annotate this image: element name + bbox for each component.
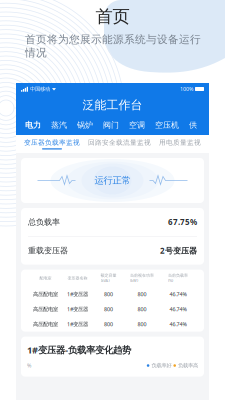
staticText: 首页将为您展示能源系统与设备运行情况	[25, 33, 201, 59]
staticText: 100%	[180, 85, 193, 93]
staticText: 运行正常	[94, 175, 130, 186]
staticText: 800	[104, 321, 113, 328]
staticText: 46.74%	[169, 291, 186, 298]
staticText: 高压配电室	[33, 306, 58, 312]
button[interactable]: 变压器负载率监视	[20, 135, 84, 153]
staticText: 800	[137, 291, 146, 298]
staticText: 锅炉	[77, 120, 93, 130]
staticText: 1#变压器	[67, 291, 88, 298]
button[interactable]: 回路安全载流量监视	[84, 135, 155, 153]
staticText: 电力	[25, 120, 41, 130]
button[interactable]: 用电质量监视	[155, 135, 205, 153]
staticText: 泛能工作台	[82, 98, 142, 112]
staticText: 回路安全载流量监视	[88, 138, 151, 147]
button[interactable]: 电力	[20, 115, 46, 135]
staticText: 高压配电室	[33, 291, 58, 297]
staticText: 重载变压器	[28, 246, 68, 255]
staticText: 负载率高	[176, 362, 198, 369]
button[interactable]: 空调	[124, 115, 150, 135]
staticText: 46.74%	[169, 306, 186, 313]
staticText: 高压配电室	[33, 321, 58, 327]
button[interactable]: 空压机	[150, 115, 184, 135]
staticText: 1#变压器	[67, 321, 88, 328]
staticText: 67.75%	[168, 217, 197, 227]
staticText: 空调	[129, 120, 145, 130]
staticText: 空压机	[155, 120, 179, 130]
staticText: 46.74%	[169, 321, 186, 328]
staticText: 2号变压器	[160, 245, 197, 256]
staticText: 阀门	[103, 120, 119, 130]
button[interactable]: 供	[184, 115, 202, 135]
staticText: 首页	[95, 6, 129, 27]
staticText: %	[27, 362, 31, 369]
staticText: 当前视在功率 (kW)	[130, 273, 154, 283]
staticText: 中国移动	[30, 86, 50, 92]
staticText: 变压器名称	[67, 276, 87, 280]
button[interactable]: 蒸汽	[46, 115, 72, 135]
staticText: 1#变压器	[67, 306, 88, 313]
staticText: 负载率好	[149, 362, 173, 369]
staticText: 1#变压器-负载率变化趋势	[27, 344, 131, 356]
staticText: 供	[189, 120, 197, 130]
staticText: 用电质量监视	[159, 138, 201, 147]
staticText: 800	[137, 321, 146, 328]
staticText: 800	[137, 306, 146, 313]
staticText: 800	[104, 291, 113, 298]
button[interactable]: 阀门	[98, 115, 124, 135]
staticText: 800	[104, 306, 113, 313]
staticText: 额定容量 (kVA)	[100, 273, 116, 283]
staticText: 配电室	[39, 276, 51, 280]
staticText: 蒸汽	[51, 120, 67, 130]
staticText: 变压器负载率监视	[24, 138, 80, 147]
staticText: 总负载率	[28, 217, 60, 227]
staticText: 当前负载率 (%)	[168, 273, 188, 283]
button[interactable]: 锅炉	[72, 115, 98, 135]
